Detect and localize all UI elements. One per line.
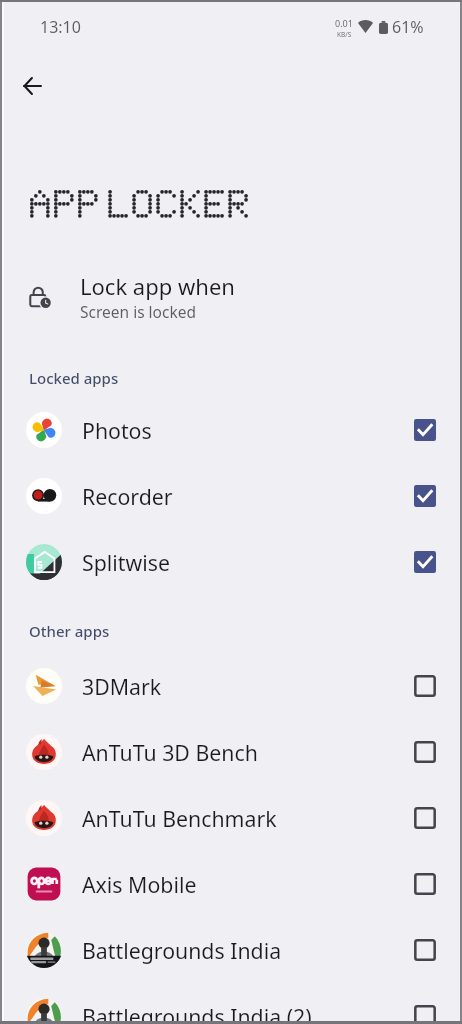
staticText: Locked apps	[29, 368, 119, 388]
button[interactable]: Recorder	[0, 463, 462, 529]
button[interactable]: Locked, checked	[403, 474, 447, 518]
button[interactable]: Not locked, unchecked	[403, 994, 447, 1024]
staticText: 61%	[392, 16, 424, 38]
button[interactable]: AnTuTu Benchmark	[0, 785, 462, 851]
staticText: Recorder	[82, 482, 403, 511]
staticText: Battlegrounds India	[82, 936, 403, 965]
button[interactable]: Battlegrounds India	[0, 917, 462, 983]
button[interactable]: Not locked, unchecked	[403, 664, 447, 708]
button[interactable]: Not locked, unchecked	[403, 928, 447, 972]
staticText: Photos	[82, 416, 403, 445]
staticText: Lock app when	[80, 271, 235, 301]
button[interactable]: Splitwise	[0, 529, 462, 595]
staticText: 3DMark	[82, 672, 403, 701]
button[interactable]: Not locked, unchecked	[403, 796, 447, 840]
button[interactable]: AnTuTu 3D Bench	[0, 719, 462, 785]
staticText: Splitwise	[82, 548, 403, 577]
button[interactable]: Battlegrounds India (2)	[0, 983, 462, 1024]
button[interactable]: Not locked, unchecked	[403, 862, 447, 906]
staticText: 13:10	[40, 16, 81, 38]
staticText: 0.01	[335, 17, 353, 29]
button[interactable]: Lock app when	[0, 270, 462, 324]
button[interactable]: Back	[8, 61, 57, 110]
button[interactable]: Locked, checked	[403, 408, 447, 452]
staticText: Axis Mobile	[82, 870, 403, 899]
staticText: Other apps	[29, 621, 110, 641]
button[interactable]: 3DMark	[0, 653, 462, 719]
button[interactable]: Axis Mobile	[0, 851, 462, 917]
staticText: Screen is locked	[80, 301, 196, 322]
staticText: Battlegrounds India (2)	[82, 1002, 403, 1024]
staticText: KB/S	[337, 30, 352, 39]
button[interactable]: Locked, checked	[403, 540, 447, 584]
button[interactable]: Not locked, unchecked	[403, 730, 447, 774]
button[interactable]: Photos	[0, 397, 462, 463]
staticText: AnTuTu 3D Bench	[82, 738, 403, 767]
staticText: AnTuTu Benchmark	[82, 804, 403, 833]
